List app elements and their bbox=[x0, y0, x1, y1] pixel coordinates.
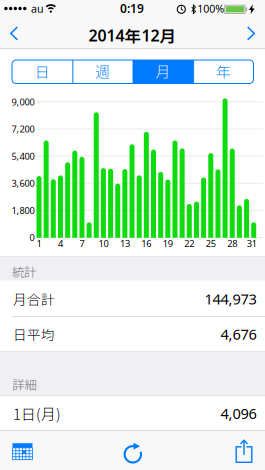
button[interactable]: Share bbox=[222, 431, 265, 470]
staticText: 年 bbox=[124, 23, 141, 47]
staticText: 25 bbox=[206, 237, 216, 250]
staticText: 144,973 bbox=[205, 289, 257, 309]
staticText: 年 bbox=[216, 60, 231, 82]
staticText: 16 bbox=[141, 237, 151, 250]
staticText: 1 bbox=[36, 237, 41, 250]
staticText: 4 bbox=[58, 237, 63, 250]
staticText: 1,800 bbox=[11, 204, 34, 216]
staticText: 10 bbox=[98, 237, 108, 250]
staticText: 2014 bbox=[88, 25, 124, 46]
staticText: 7,200 bbox=[11, 123, 34, 135]
staticText: 月 bbox=[159, 23, 176, 47]
staticText: 1日(月) bbox=[13, 403, 61, 424]
staticText: 28 bbox=[227, 237, 237, 250]
staticText: 月 bbox=[155, 60, 170, 82]
staticText: 3,600 bbox=[11, 177, 34, 189]
staticText: 4,676 bbox=[221, 324, 257, 344]
button[interactable]: Refresh bbox=[110, 431, 154, 470]
button[interactable]: Next month bbox=[239, 21, 263, 45]
staticText: au bbox=[31, 2, 44, 16]
staticText: 9,000 bbox=[11, 96, 34, 108]
staticText: 日 bbox=[35, 60, 50, 82]
staticText: 5,400 bbox=[11, 150, 34, 162]
button[interactable]: 週 bbox=[73, 59, 133, 83]
staticText: 詳細 bbox=[12, 375, 36, 393]
staticText: 4,096 bbox=[221, 404, 257, 423]
staticText: 日平均 bbox=[13, 324, 55, 344]
staticText: 100% bbox=[197, 2, 224, 16]
button[interactable]: 月 bbox=[133, 59, 193, 83]
button[interactable]: 日 bbox=[12, 59, 72, 83]
staticText: 統計 bbox=[12, 262, 36, 280]
staticText: 0 bbox=[29, 231, 34, 244]
staticText: 週 bbox=[95, 60, 110, 82]
staticText: 7 bbox=[79, 237, 84, 250]
staticText: 13 bbox=[120, 237, 130, 250]
staticText: 22 bbox=[184, 237, 194, 250]
staticText: 19 bbox=[163, 237, 173, 250]
staticText: 0:19 bbox=[120, 0, 144, 16]
button[interactable]: 年 bbox=[193, 59, 253, 83]
button[interactable]: Previous month bbox=[2, 21, 26, 45]
staticText: 月合計 bbox=[13, 289, 55, 309]
staticText: 31 bbox=[247, 237, 257, 250]
button[interactable]: Calendar bbox=[0, 431, 44, 470]
staticText: 12 bbox=[141, 25, 159, 46]
